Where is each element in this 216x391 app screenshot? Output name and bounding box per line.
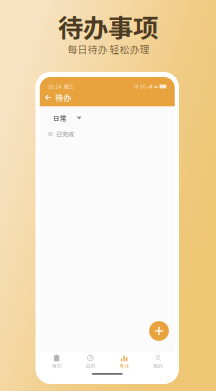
- button[interactable]: 已完成: [41, 129, 92, 138]
- button[interactable]: 日历: [73, 353, 107, 371]
- staticText: 待办: [52, 362, 62, 369]
- staticText: 日常: [53, 113, 67, 123]
- staticText: 专注: [119, 362, 129, 369]
- staticText: 已完成: [56, 129, 74, 139]
- button[interactable]: 返回: [42, 91, 54, 103]
- button[interactable]: 日常: [43, 112, 101, 123]
- staticText: 5G: [140, 83, 146, 90]
- staticText: 待办事项: [58, 8, 158, 45]
- button[interactable]: 我的: [141, 353, 175, 371]
- staticText: 10:24 周三: [47, 82, 73, 90]
- staticText: 我的: [153, 362, 163, 369]
- staticText: 每日待办 轻松办理: [67, 42, 149, 56]
- button[interactable]: 专注: [107, 353, 141, 371]
- button[interactable]: 待办: [40, 353, 74, 371]
- button[interactable]: 新建待办: [149, 321, 169, 341]
- staticText: 待办: [55, 92, 71, 103]
- staticText: 日历: [85, 362, 95, 369]
